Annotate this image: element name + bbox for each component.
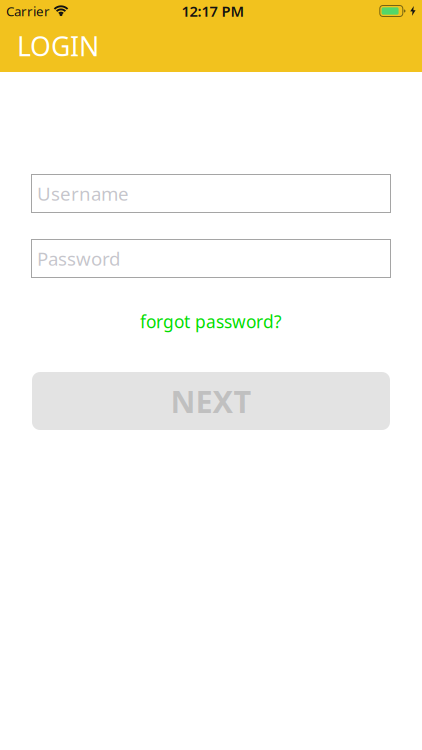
staticText: Carrier — [6, 2, 50, 20]
button[interactable]: NEXT — [32, 372, 390, 430]
staticText: NEXT — [170, 381, 251, 421]
staticText: LOGIN — [17, 28, 99, 64]
staticText: Password — [37, 246, 120, 271]
staticText: 12:17 PM — [181, 1, 244, 21]
button[interactable]: Username — [31, 174, 391, 213]
button[interactable]: forgot password? — [140, 310, 282, 333]
button[interactable]: Password — [31, 239, 391, 278]
staticText: Username — [37, 181, 129, 206]
staticText: forgot password? — [140, 310, 282, 333]
